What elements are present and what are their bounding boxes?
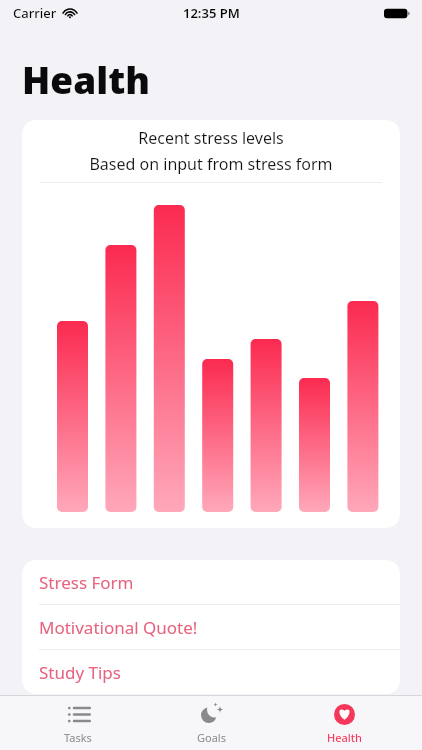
button[interactable]: Study Tips [22, 650, 400, 694]
staticText: Health [327, 730, 362, 745]
button[interactable]: Stress Form [22, 560, 400, 604]
staticText: Recent stress levels [22, 127, 400, 149]
staticText: Based on input from stress form [22, 153, 400, 175]
staticText: Motivational Quote! [39, 616, 198, 639]
staticText: Goals [197, 730, 226, 745]
button[interactable]: Goals [156, 696, 266, 750]
staticText: Study Tips [39, 661, 121, 684]
staticText: Carrier [13, 4, 57, 22]
button[interactable]: Health [289, 696, 399, 750]
staticText: Health [22, 54, 151, 104]
staticText: Stress Form [39, 571, 134, 594]
button[interactable]: Tasks [23, 696, 133, 750]
staticText: 12:35 PM [183, 4, 240, 22]
staticText: Tasks [64, 730, 92, 745]
button[interactable]: Motivational Quote! [22, 605, 400, 649]
